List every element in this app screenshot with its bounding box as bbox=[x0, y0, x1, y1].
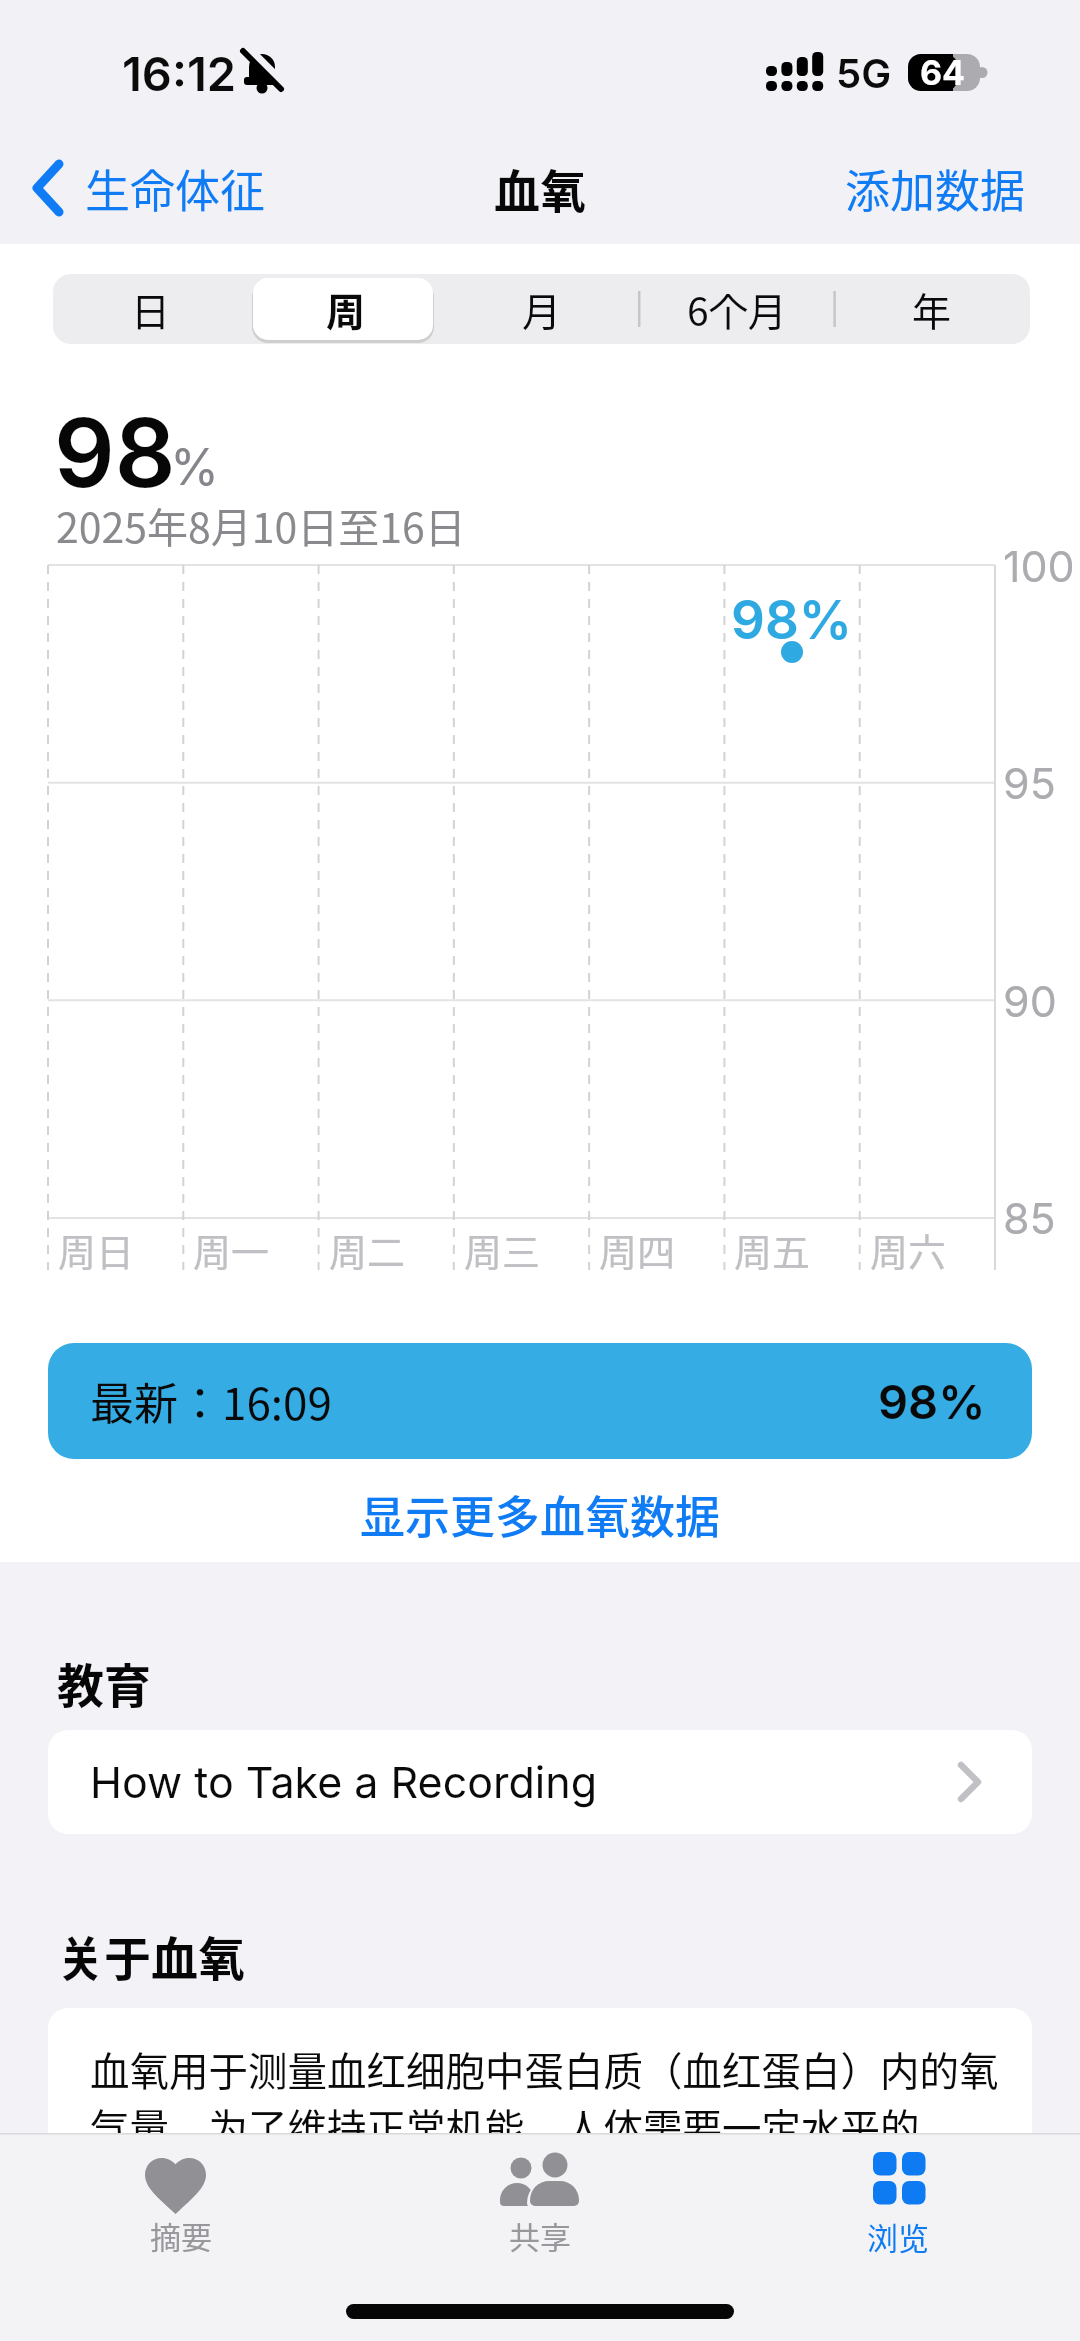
button[interactable]: 年 bbox=[612, 239, 1080, 379]
staticText: 90 bbox=[1003, 975, 1057, 1027]
staticText: 周一 bbox=[193, 1222, 270, 1277]
button[interactable]: 日 bbox=[0, 239, 471, 379]
staticText: 98 bbox=[54, 395, 176, 510]
staticText: 月 bbox=[522, 281, 562, 337]
button[interactable] bbox=[48, 1343, 1032, 1459]
staticText: 98% bbox=[731, 588, 853, 652]
staticText: How to Take a Recording bbox=[90, 1756, 598, 1808]
button[interactable]: 周 bbox=[26, 239, 666, 379]
staticText: 85 bbox=[1003, 1192, 1056, 1244]
button[interactable]: 月 bbox=[222, 239, 862, 379]
staticText: % bbox=[170, 437, 220, 497]
staticText: 64 bbox=[920, 52, 966, 93]
staticText: 95 bbox=[1003, 757, 1056, 809]
staticText: 显示更多血氧数据 bbox=[360, 1482, 721, 1547]
button[interactable] bbox=[455, 2140, 625, 2270]
staticText: 100 bbox=[1003, 540, 1075, 592]
staticText: 5G bbox=[836, 49, 892, 97]
button[interactable] bbox=[20, 158, 80, 218]
button[interactable] bbox=[96, 2140, 266, 2270]
staticText: 血氧用于测量血红细胞中蛋白质（血红蛋白）内的氧 bbox=[90, 2040, 999, 2097]
button[interactable] bbox=[48, 1730, 1032, 1834]
staticText: 周六 bbox=[870, 1222, 947, 1277]
staticText: 16:12 bbox=[122, 45, 237, 102]
staticText: 添加数据 bbox=[845, 156, 1026, 221]
staticText: 气量。为了维持正常机能，人体需要一定水平的 bbox=[90, 2097, 920, 2154]
staticText: 关于血氧 bbox=[57, 1921, 245, 1989]
button[interactable] bbox=[48, 2008, 1032, 2341]
staticText: 6个月 bbox=[687, 281, 787, 337]
staticText: 日 bbox=[131, 281, 171, 337]
button[interactable]: 显示更多血氧数据 bbox=[220, 1444, 860, 1584]
staticText: 周二 bbox=[329, 1222, 406, 1277]
staticText: 生命体征 bbox=[85, 156, 266, 221]
staticText: 周 bbox=[326, 281, 366, 337]
staticText: 年 bbox=[912, 281, 952, 337]
staticText: 教育 bbox=[57, 1648, 151, 1716]
staticText: 周日 bbox=[58, 1222, 135, 1277]
staticText: 共享 bbox=[509, 2213, 571, 2258]
button[interactable]: 6个月 bbox=[417, 239, 1057, 379]
staticText: 最新：16:09 bbox=[90, 1369, 332, 1433]
staticText: 血氧 bbox=[494, 155, 586, 222]
staticText: 周三 bbox=[464, 1222, 541, 1277]
button[interactable] bbox=[815, 2140, 985, 2270]
staticText: 浏览 bbox=[867, 2214, 929, 2259]
staticText: 98% bbox=[878, 1373, 986, 1430]
staticText: 摘要 bbox=[150, 2213, 212, 2258]
staticText: 周五 bbox=[734, 1222, 811, 1277]
staticText: 2025年8月10日至16日 bbox=[56, 495, 466, 554]
staticText: 周四 bbox=[599, 1222, 676, 1277]
